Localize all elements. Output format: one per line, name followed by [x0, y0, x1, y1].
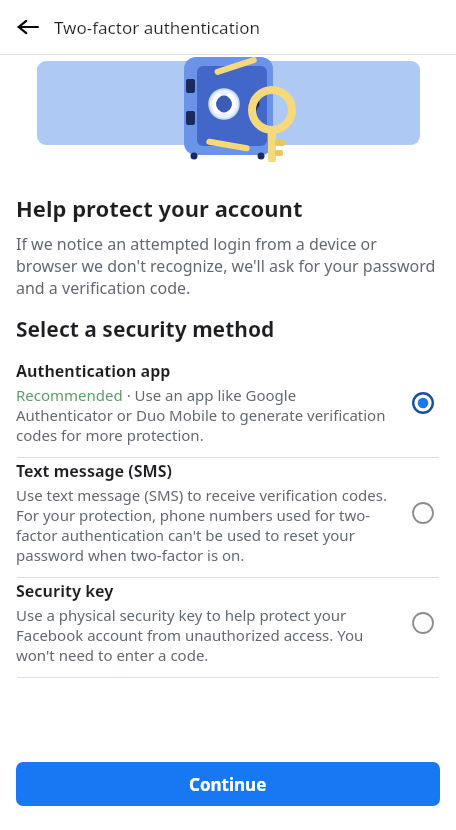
- staticText: Use a physical security key to help prot…: [16, 605, 394, 665]
- staticText: Select a security method: [16, 315, 275, 344]
- staticText: Two-factor authentication: [54, 16, 260, 39]
- staticText: Continue: [189, 773, 267, 796]
- button[interactable]: Authentication app: [16, 358, 440, 457]
- staticText: Use text message (SMS) to receive verifi…: [16, 485, 394, 565]
- staticText: Recommended · Use an app like Google Aut…: [16, 385, 394, 445]
- button[interactable]: Text message (SMS): [16, 458, 440, 577]
- staticText: Text message (SMS): [16, 460, 172, 482]
- staticText: Help protect your account: [16, 193, 303, 223]
- staticText: Authentication app: [16, 360, 171, 382]
- button[interactable]: Continue: [16, 762, 440, 806]
- staticText: Security key: [16, 580, 114, 602]
- button[interactable]: Back: [8, 7, 48, 47]
- button[interactable]: Security key: [16, 578, 440, 677]
- staticText: If we notice an attempted login from a d…: [16, 233, 440, 299]
